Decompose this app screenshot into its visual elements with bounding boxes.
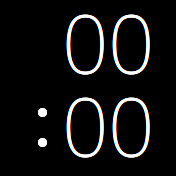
staticText: 00 [62,71,154,176]
staticText: 00 [62,0,154,96]
staticText: 00 [62,71,154,176]
button[interactable]: Timer 00:00 [0,0,176,176]
staticText: 00 [62,0,154,96]
staticText: 00 [62,0,154,96]
staticText: 00 [62,71,154,176]
